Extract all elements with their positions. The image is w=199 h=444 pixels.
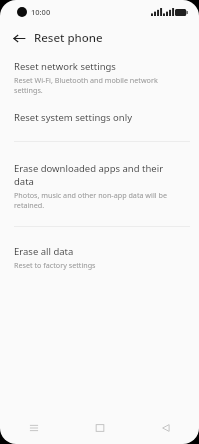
staticText: Reset phone <box>34 30 103 46</box>
button[interactable]: Home <box>67 412 133 444</box>
button[interactable]: Reset system settings only <box>0 109 199 126</box>
button[interactable]: Erase all data <box>0 243 199 272</box>
staticText: Erase downloaded apps and their data <box>14 162 185 188</box>
button[interactable]: Back <box>133 412 199 444</box>
staticText: Reset system settings only <box>14 111 133 124</box>
staticText: Photos, music and other non-app data wil… <box>14 190 185 210</box>
staticText: Reset to factory settings <box>14 260 96 270</box>
staticText: Reset Wi-Fi, Bluetooth and mobile networ… <box>14 75 185 95</box>
button[interactable]: Erase downloaded apps and their data <box>0 160 199 212</box>
button[interactable]: Recents <box>0 412 67 444</box>
staticText: Reset network settings <box>14 60 116 73</box>
staticText: Erase all data <box>14 245 74 258</box>
button[interactable]: Reset network settings <box>0 58 199 97</box>
staticText: 10:00 <box>31 7 51 17</box>
button[interactable]: Back <box>8 27 30 49</box>
